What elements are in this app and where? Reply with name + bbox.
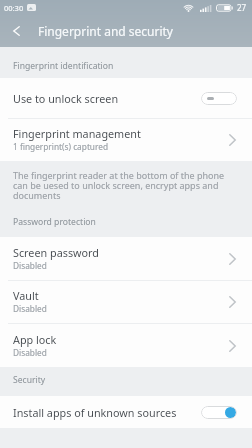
button[interactable]: Fingerprint management bbox=[0, 119, 252, 161]
button[interactable]: Use to unlock screen bbox=[0, 78, 252, 118]
button[interactable]: Vault bbox=[0, 281, 252, 323]
staticText: Security bbox=[13, 374, 46, 386]
staticText: Vault bbox=[13, 288, 39, 303]
button[interactable] bbox=[201, 406, 237, 419]
button[interactable] bbox=[201, 92, 237, 105]
staticText: 27 bbox=[237, 2, 247, 13]
staticText: Install apps of unknown sources bbox=[13, 405, 177, 420]
button[interactable]: Screen password bbox=[0, 237, 252, 280]
staticText: 1 fingerprint(s) captured bbox=[13, 141, 109, 152]
staticText: Screen password bbox=[13, 245, 99, 260]
staticText: Use to unlock screen bbox=[13, 91, 119, 106]
button[interactable]: App lock bbox=[0, 324, 252, 367]
button[interactable]: Install apps of unknown sources bbox=[0, 396, 252, 428]
staticText: 00:30 bbox=[4, 3, 24, 13]
staticText: Disabled bbox=[13, 260, 47, 271]
staticText: Disabled bbox=[13, 347, 47, 358]
staticText: Fingerprint and security bbox=[38, 23, 173, 39]
staticText: The fingerprint reader at the bottom of … bbox=[13, 169, 225, 201]
staticText: Fingerprint management bbox=[13, 126, 141, 141]
staticText: Fingerprint identification bbox=[13, 60, 114, 72]
staticText: Disabled bbox=[13, 303, 47, 314]
button[interactable] bbox=[13, 26, 20, 36]
staticText: App lock bbox=[13, 332, 57, 347]
staticText: Password protection bbox=[13, 216, 96, 228]
